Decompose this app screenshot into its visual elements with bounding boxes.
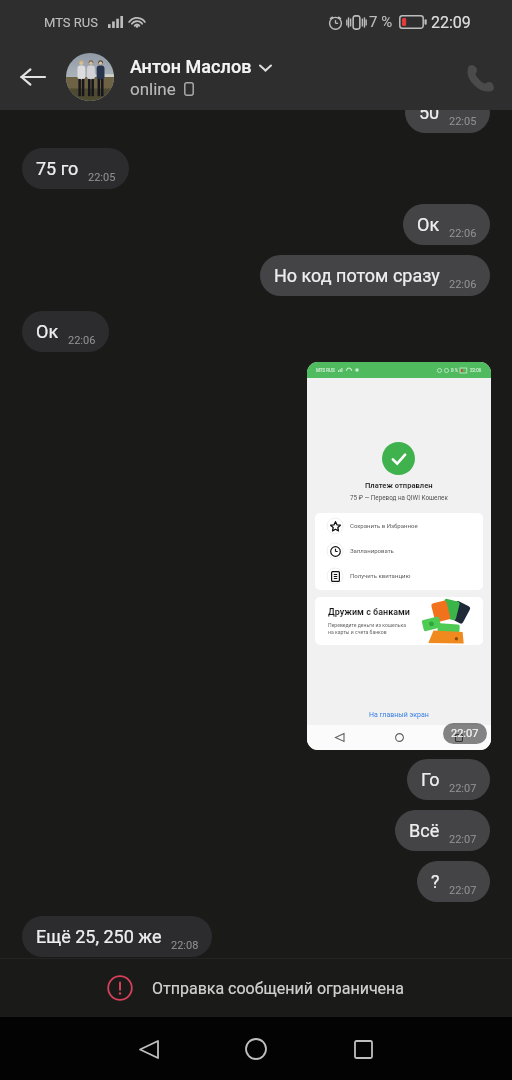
staticText: 22:08 [171, 939, 199, 952]
button[interactable]: ? [417, 861, 490, 902]
staticText: Всё [409, 820, 440, 841]
button[interactable]: Го [407, 759, 490, 800]
button[interactable]: Home [232, 1025, 280, 1073]
staticText: Ок [36, 321, 59, 342]
staticText: 22:06 [449, 278, 477, 291]
staticText: 22:07 [449, 884, 477, 897]
staticText: 22:05 [449, 115, 477, 128]
button[interactable]: Но код потом сразу [260, 255, 490, 296]
staticText: 22:06 [68, 334, 96, 347]
staticText: 50 [419, 102, 440, 123]
staticText: Но код потом сразу [274, 265, 440, 286]
staticText: 22:07 [451, 727, 479, 740]
staticText: 75 го [36, 158, 79, 179]
staticText: MTS RUS [316, 368, 335, 373]
button[interactable]: Запланировать [315, 538, 483, 563]
staticText: 22:06 [449, 227, 477, 240]
staticText: 22:07 [449, 782, 477, 795]
button[interactable]: Recents [339, 1025, 387, 1073]
staticText: Запланировать [350, 547, 394, 554]
button[interactable]: Back [125, 1025, 173, 1073]
staticText: online [130, 79, 176, 99]
button[interactable]: Получить квитанцию [315, 563, 483, 588]
button[interactable]: 50 [405, 92, 490, 133]
staticText: 7 % [369, 13, 393, 31]
staticText: Ещё 25, 250 же [36, 926, 162, 947]
staticText: Антон Маслов [130, 56, 252, 77]
staticText: Дружим с банками [328, 607, 410, 618]
staticText: 22:07 [449, 833, 477, 846]
button[interactable]: Ещё 25, 250 же [22, 916, 212, 957]
staticText: MTS RUS [44, 15, 98, 30]
button[interactable]: Ок [22, 311, 109, 352]
staticText: 22:09 [431, 13, 471, 32]
button[interactable]: Сохранить в Избранное [315, 513, 483, 538]
staticText: 22:06 [470, 368, 482, 373]
staticText: На главный экран [369, 711, 429, 719]
button[interactable]: Всё [395, 810, 490, 851]
button[interactable]: Photo [307, 362, 491, 750]
staticText: Переведите деньги из кошелька на карты и… [328, 622, 407, 635]
staticText: Отправка сообщений ограничена [152, 979, 405, 998]
staticText: Ок [417, 214, 440, 235]
button[interactable]: Call [450, 44, 512, 110]
button[interactable]: 75 го [22, 148, 129, 189]
staticText: Получить квитанцию [350, 572, 411, 579]
staticText: Го [421, 769, 440, 790]
button[interactable]: Ок [403, 204, 490, 245]
staticText: Сохранить в Избранное [350, 522, 418, 529]
button[interactable]: Дружим с банками [315, 597, 483, 645]
staticText: 22:05 [88, 171, 116, 184]
staticText: 0 % [451, 368, 458, 373]
staticText: 75 ₽ — Перевод на QIWI Кошелек [350, 494, 448, 501]
staticText: ? [431, 871, 440, 892]
staticText: Платеж отправлен [365, 481, 433, 490]
button[interactable]: Back [0, 44, 66, 110]
